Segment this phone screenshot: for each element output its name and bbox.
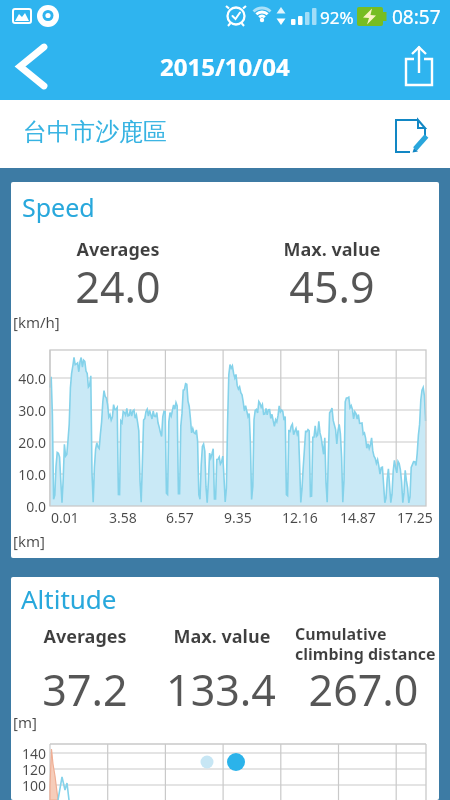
staticText: 30.0	[12, 401, 46, 420]
button[interactable]	[0, 33, 60, 100]
staticText: 0.0	[12, 497, 46, 516]
staticText: [km/h]	[13, 312, 60, 332]
staticText: 37.2	[11, 660, 159, 719]
button[interactable]	[394, 33, 450, 100]
staticText: 10.0	[12, 465, 46, 484]
staticText: 133.4	[141, 660, 301, 719]
staticText: 2015/10/04	[160, 50, 290, 83]
staticText: 20.0	[12, 433, 46, 452]
staticText: 0.01	[51, 508, 79, 527]
staticText: Max. value	[225, 237, 439, 262]
staticText: 9.35	[224, 508, 252, 527]
staticText: Cumulative climbing distance	[295, 623, 436, 664]
staticText: 台中市沙鹿區	[23, 117, 167, 147]
staticText: 14.87	[340, 508, 376, 527]
staticText: 92%	[320, 6, 354, 29]
staticText: [km]	[13, 531, 45, 551]
staticText: Max. value	[142, 624, 302, 649]
staticText: 3.58	[109, 508, 137, 527]
staticText: 17.25	[397, 508, 433, 527]
button[interactable]	[394, 100, 450, 168]
staticText: 12.16	[282, 508, 318, 527]
staticText: 24.0	[11, 257, 225, 316]
staticText: 140	[12, 744, 46, 763]
staticText: 120	[12, 760, 46, 779]
staticText: 45.9	[225, 257, 439, 316]
button[interactable]: Averages	[11, 624, 159, 649]
staticText: 100	[12, 776, 46, 795]
staticText: Altitude	[21, 581, 117, 616]
staticText: Speed	[22, 190, 95, 224]
staticText: 6.57	[166, 508, 194, 527]
staticText: [m]	[13, 712, 37, 732]
staticText: 267.0	[283, 660, 439, 719]
button[interactable]: Averages	[11, 237, 225, 262]
staticText: 08:57	[392, 4, 441, 30]
staticText: 40.0	[12, 369, 46, 388]
